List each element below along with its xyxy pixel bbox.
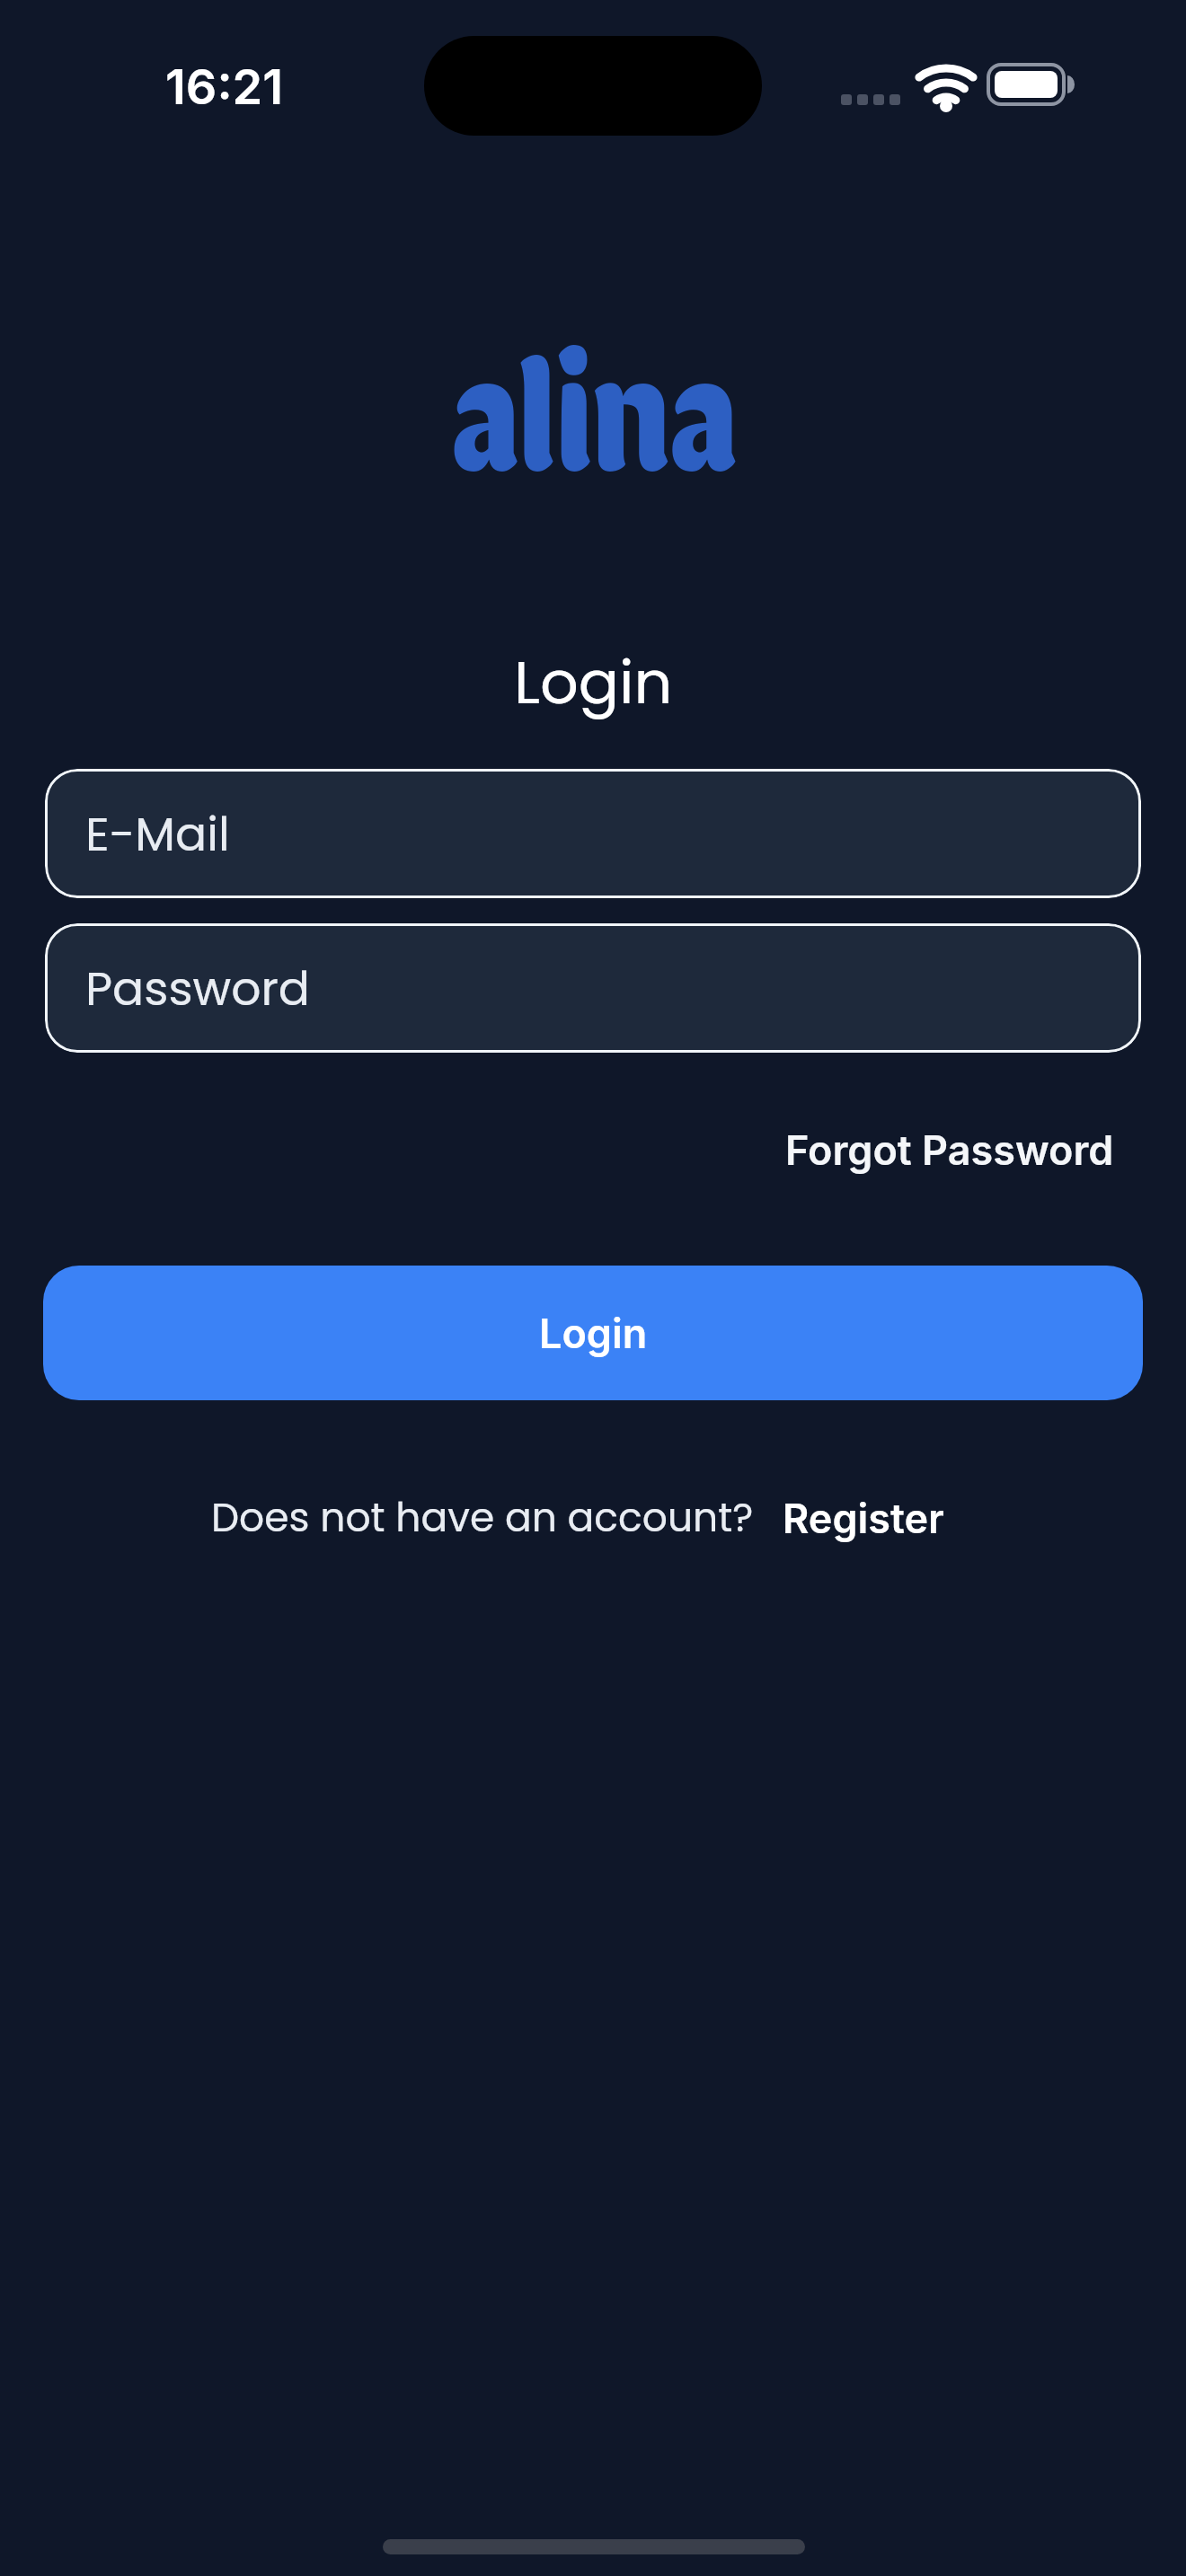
staticText: Login bbox=[514, 640, 673, 725]
staticText: Does not have an account? bbox=[211, 1490, 754, 1546]
button[interactable]: Register bbox=[783, 1494, 944, 1542]
staticText: 16:21 bbox=[165, 57, 284, 116]
staticText: Password bbox=[85, 956, 311, 1021]
staticText: Login bbox=[539, 1309, 648, 1357]
button[interactable]: Password bbox=[45, 923, 1141, 1053]
button[interactable]: E-Mail bbox=[45, 769, 1141, 898]
staticText: E-Mail bbox=[85, 801, 230, 867]
staticText: Register bbox=[783, 1494, 944, 1542]
staticText: alina bbox=[449, 316, 738, 496]
button[interactable]: Forgot Password bbox=[647, 1112, 1114, 1187]
staticText: Forgot Password bbox=[785, 1125, 1114, 1174]
button[interactable]: Login bbox=[43, 1266, 1143, 1400]
